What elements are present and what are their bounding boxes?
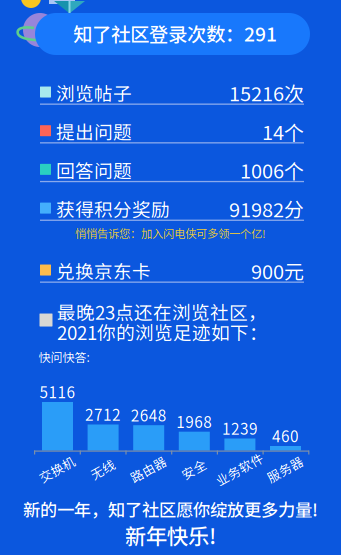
staticText: 获得积分奖励 xyxy=(56,195,170,222)
button[interactable]: 提出问题 xyxy=(40,123,304,161)
button[interactable]: 知了社区登录次数：291 xyxy=(35,13,310,55)
staticText: 1968 xyxy=(176,410,212,432)
button[interactable]: 浏览帖子 xyxy=(40,84,304,123)
button[interactable]: 获得积分奖励 xyxy=(40,200,304,239)
staticText: 900元 xyxy=(251,256,304,285)
staticText: 快问快答: xyxy=(38,348,89,365)
staticText: 15216次 xyxy=(229,78,304,107)
staticText: 5116 xyxy=(39,380,75,403)
staticText: 1239 xyxy=(222,417,258,439)
staticText: 14个 xyxy=(262,117,304,146)
staticText: 交换机 xyxy=(37,460,76,478)
staticText: 悄悄告诉您：加入闪电侠可多领一个亿! xyxy=(75,225,266,241)
staticText: 路由器 xyxy=(129,460,168,478)
staticText: 业务软件 xyxy=(213,460,265,478)
staticText: 无线 xyxy=(90,460,116,478)
staticText: 最晚23点还在浏览社区， xyxy=(57,298,267,325)
button[interactable]: 回答问题 xyxy=(40,161,304,200)
button[interactable]: 兑换京东卡 xyxy=(40,262,304,301)
staticText: 浏览帖子 xyxy=(56,79,132,106)
staticText: 兑换京东卡 xyxy=(56,257,151,284)
staticText: 2021你的浏览足迹如下： xyxy=(57,318,268,345)
staticText: 1006个 xyxy=(240,155,304,184)
staticText: 安全 xyxy=(181,460,207,478)
staticText: 新年快乐! xyxy=(125,520,216,550)
staticText: 460 xyxy=(272,424,299,447)
staticText: 新的一年，知了社区愿你绽放更多力量! xyxy=(23,496,318,522)
staticText: 2648 xyxy=(131,404,167,426)
staticText: 知了社区登录次数：291 xyxy=(73,19,277,47)
staticText: 服务器 xyxy=(265,460,304,478)
staticText: 提出问题 xyxy=(56,118,132,145)
staticText: 2712 xyxy=(85,403,121,425)
staticText: 91982分 xyxy=(229,194,304,223)
staticText: 回答问题 xyxy=(56,156,132,183)
